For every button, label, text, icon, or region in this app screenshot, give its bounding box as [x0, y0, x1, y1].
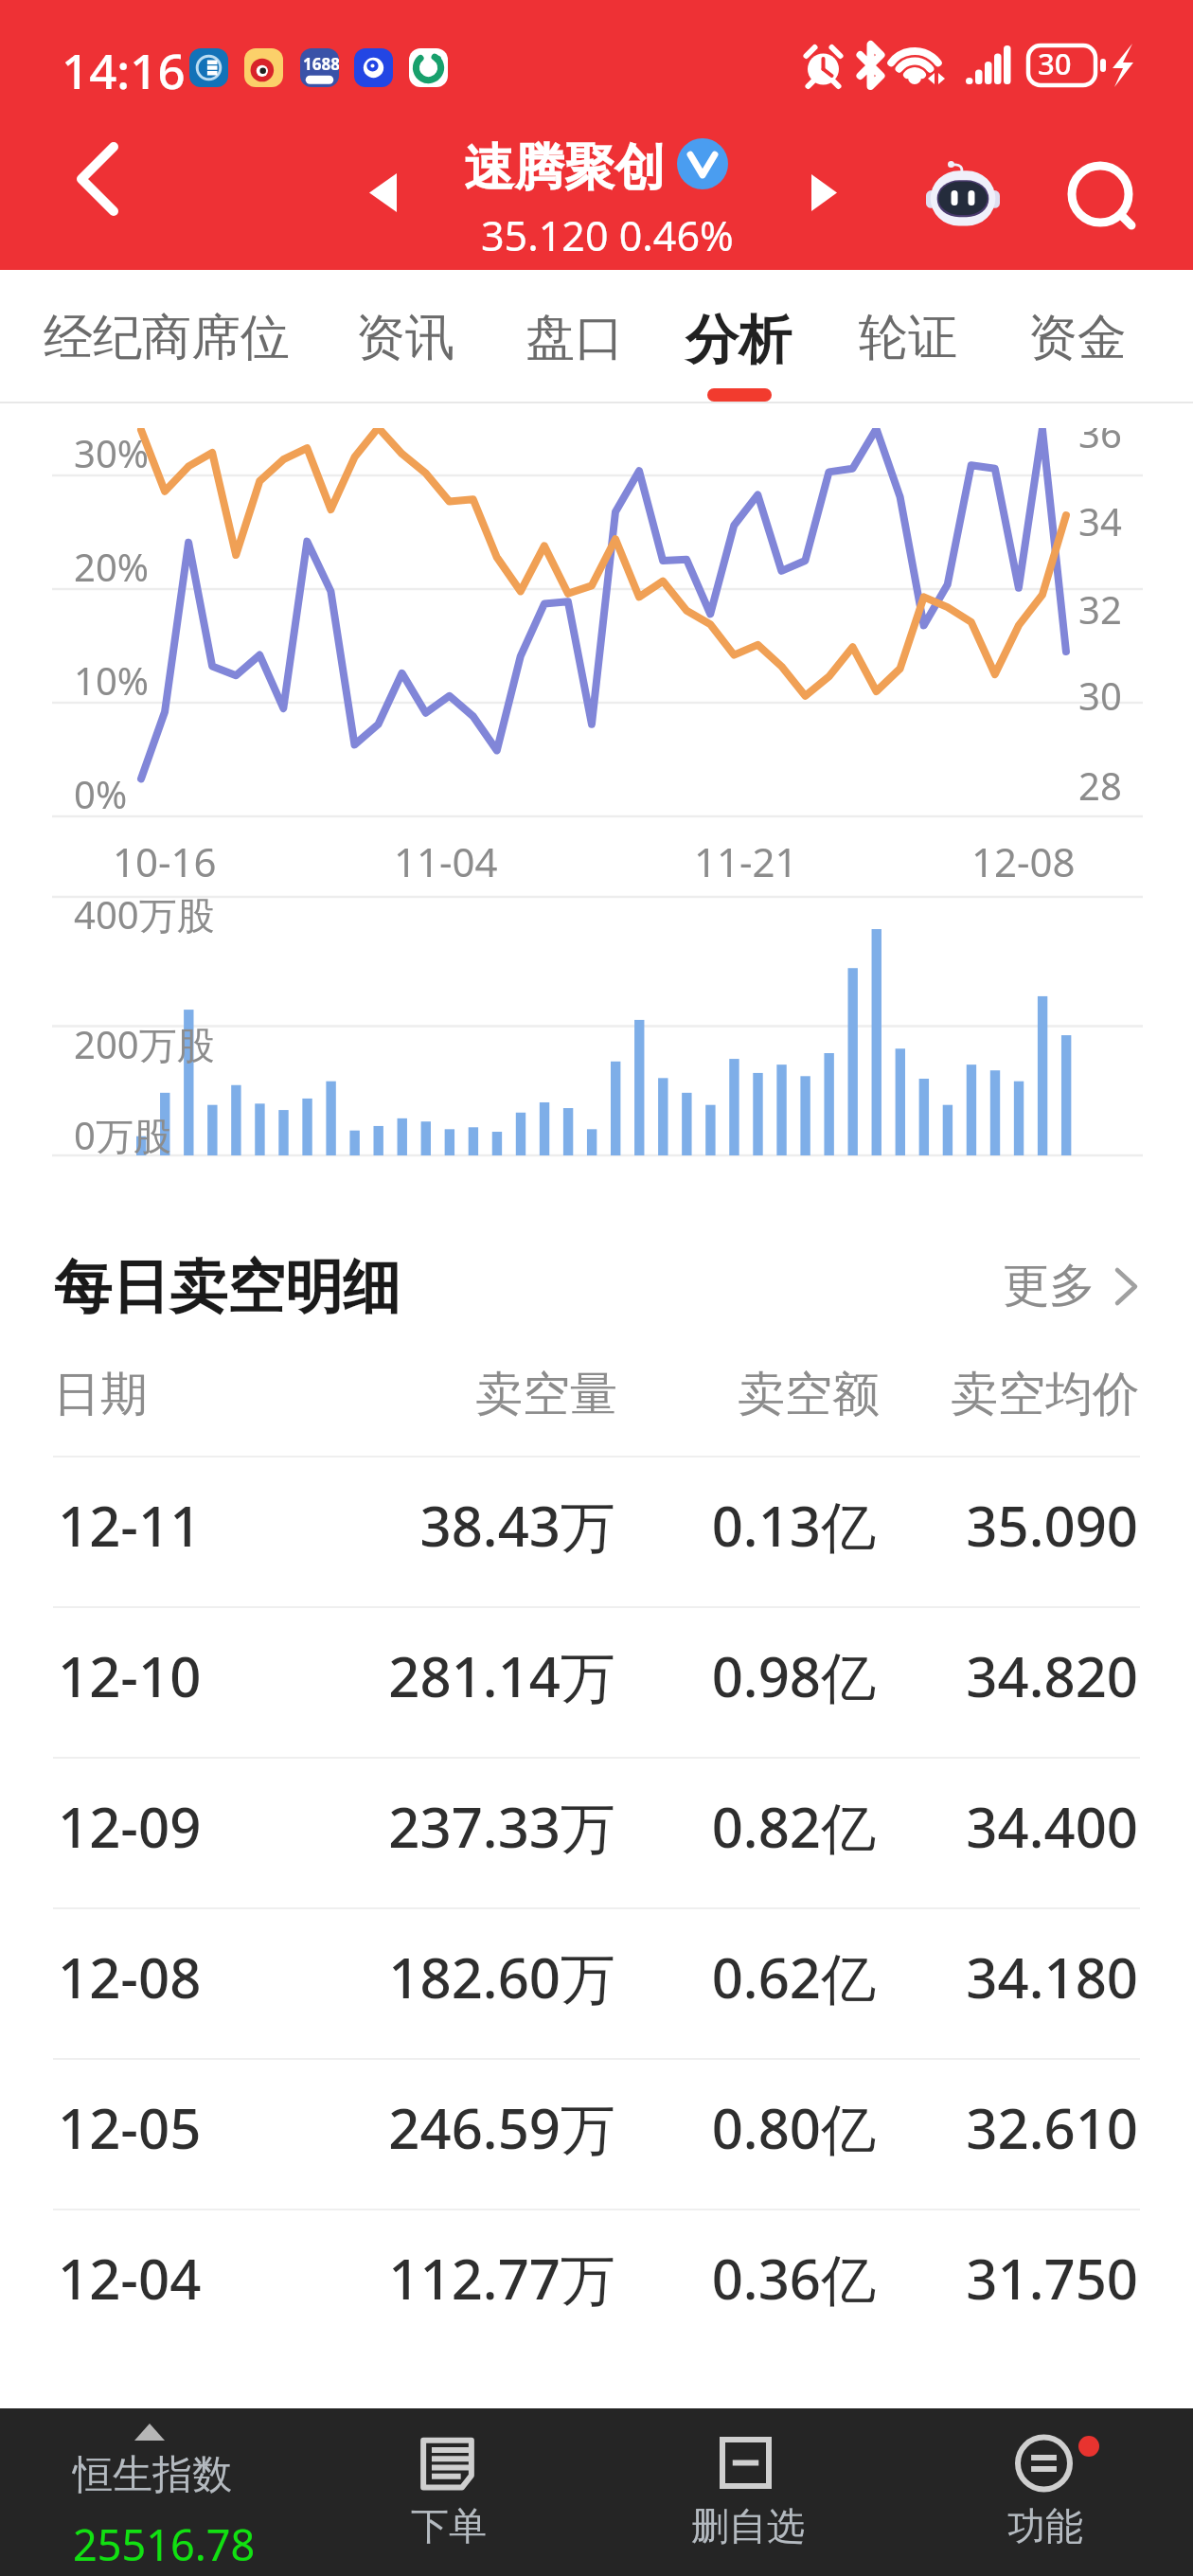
- staticText: 速腾聚创: [464, 136, 665, 200]
- staticText: 12-08: [58, 1940, 202, 2014]
- staticText: 30: [1078, 670, 1122, 721]
- staticText: 0.82亿: [658, 1789, 876, 1864]
- staticText: 10-16: [113, 834, 217, 888]
- staticText: 34.820: [920, 1638, 1138, 1713]
- staticText: 1688: [303, 53, 339, 75]
- staticText: 20%: [74, 541, 149, 592]
- staticText: 0%: [74, 768, 128, 819]
- staticText: 分析: [686, 307, 792, 374]
- button[interactable]: Search: [1059, 152, 1146, 240]
- button[interactable]: 12-10: [0, 1608, 1193, 1757]
- staticText: 0.62亿: [658, 1940, 876, 2014]
- button[interactable]: 12-09: [0, 1759, 1193, 1907]
- staticText: 12-11: [58, 1488, 202, 1563]
- staticText: 11-21: [694, 834, 798, 888]
- button[interactable]: Back: [45, 127, 150, 231]
- staticText: 237.33万: [312, 1789, 615, 1864]
- button[interactable]: 经纪商席位: [44, 307, 290, 369]
- staticText: 34.400: [920, 1789, 1138, 1864]
- staticText: 32.610: [920, 2090, 1138, 2165]
- staticText: 34: [1078, 495, 1122, 546]
- staticText: 281.14万: [312, 1638, 615, 1713]
- staticText: 12-08: [971, 834, 1076, 888]
- button[interactable]: 资金: [1028, 307, 1127, 369]
- staticText: 经纪商席位: [44, 307, 290, 369]
- staticText: 182.60万: [312, 1940, 615, 2014]
- button[interactable]: 12-11: [0, 1458, 1193, 1606]
- staticText: 卖空量: [475, 1365, 617, 1424]
- staticText: 12-10: [58, 1638, 202, 1713]
- staticText: 卖空均价: [951, 1365, 1140, 1424]
- staticText: 功能: [1007, 2502, 1083, 2549]
- button[interactable]: 功能: [895, 2408, 1193, 2576]
- button[interactable]: 12-08: [0, 1909, 1193, 2058]
- button[interactable]: 资讯: [356, 307, 454, 369]
- button[interactable]: 盘口: [525, 307, 624, 369]
- button[interactable]: Previous stock: [345, 154, 420, 230]
- staticText: 0.80亿: [658, 2090, 876, 2165]
- button[interactable]: 轮证: [859, 307, 957, 369]
- button[interactable]: 12-05: [0, 2060, 1193, 2209]
- staticText: 31.750: [920, 2241, 1138, 2316]
- staticText: 10%: [74, 654, 149, 706]
- button[interactable]: 恒生指数: [0, 2408, 298, 2576]
- button[interactable]: 下单: [298, 2408, 596, 2576]
- staticText: 12-04: [58, 2241, 202, 2316]
- staticText: 删自选: [691, 2502, 805, 2549]
- staticText: 30%: [74, 428, 149, 478]
- button[interactable]: Next stock: [786, 154, 862, 230]
- staticText: 38.43万: [312, 1488, 615, 1563]
- button[interactable]: AI assistant: [920, 153, 1006, 233]
- staticText: 日期: [53, 1365, 148, 1424]
- staticText: 25516.78: [73, 2515, 256, 2573]
- staticText: 36: [1078, 428, 1122, 458]
- staticText: 每日卖空明细: [54, 1251, 401, 1324]
- button[interactable]: 更多: [1003, 1257, 1137, 1315]
- button[interactable]: 分析: [686, 307, 792, 374]
- staticText: 0万股: [74, 1109, 171, 1161]
- staticText: 更多: [1003, 1257, 1095, 1315]
- staticText: 400万股: [74, 888, 215, 940]
- staticText: 32: [1078, 583, 1122, 635]
- staticText: 30: [1038, 44, 1072, 83]
- staticText: 14:16: [62, 37, 186, 102]
- staticText: 下单: [411, 2502, 487, 2549]
- staticText: 28: [1078, 760, 1122, 811]
- staticText: 11-04: [394, 834, 498, 888]
- button[interactable]: 删自选: [596, 2408, 895, 2576]
- staticText: 34.180: [920, 1940, 1138, 2014]
- staticText: 0.36亿: [658, 2241, 876, 2316]
- staticText: 资金: [1028, 307, 1127, 369]
- staticText: 246.59万: [312, 2090, 615, 2165]
- staticText: 35.120 0.46%: [481, 207, 734, 263]
- button[interactable]: 12-04: [0, 2210, 1193, 2359]
- staticText: 恒生指数: [73, 2450, 232, 2500]
- staticText: 35.090: [920, 1488, 1138, 1563]
- staticText: 0.98亿: [658, 1638, 876, 1713]
- staticText: 资讯: [356, 307, 454, 369]
- staticText: 12-05: [58, 2090, 202, 2165]
- staticText: 0.13亿: [658, 1488, 876, 1563]
- staticText: 盘口: [525, 307, 624, 369]
- staticText: 12-09: [58, 1789, 202, 1864]
- staticText: 112.77万: [312, 2241, 615, 2316]
- staticText: 200万股: [74, 1018, 215, 1070]
- staticText: 卖空额: [738, 1365, 880, 1424]
- staticText: 轮证: [859, 307, 957, 369]
